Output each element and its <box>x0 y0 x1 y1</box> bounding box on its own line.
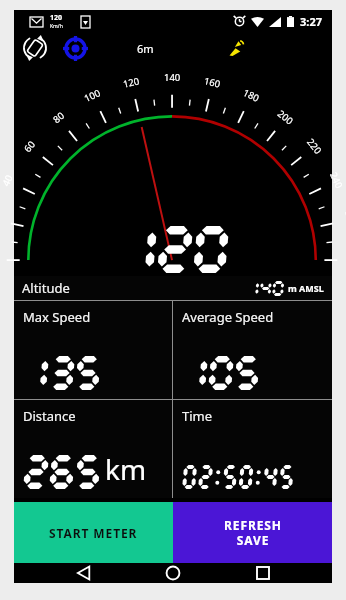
staticText: m AMSL <box>288 282 324 294</box>
staticText: START METER <box>49 525 138 541</box>
staticText: 6m <box>137 41 154 56</box>
staticText: 40 <box>0 173 16 188</box>
button[interactable]: Altitude <box>14 276 332 300</box>
staticText: 180 <box>241 86 262 105</box>
staticText: 100 <box>82 86 103 105</box>
button[interactable]: Time <box>173 400 332 498</box>
staticText: km <box>105 450 147 488</box>
button[interactable]: START METER <box>14 502 173 563</box>
staticText: 60 <box>21 138 38 155</box>
button[interactable]: REFRESH SAVE <box>173 502 332 563</box>
staticText: 120 <box>50 13 63 23</box>
staticText: Altitude <box>22 279 70 297</box>
staticText: 160 <box>203 74 222 91</box>
button[interactable]: Rotate screen <box>20 33 50 63</box>
staticText: 80 <box>50 109 67 126</box>
staticText: 120 <box>122 74 141 91</box>
button[interactable]: Back <box>64 563 104 583</box>
staticText: Distance <box>23 407 76 425</box>
staticText: Average Speed <box>182 308 274 326</box>
staticText: 140 <box>164 71 181 84</box>
button[interactable]: Average Speed <box>173 301 332 399</box>
staticText: Time <box>182 407 213 425</box>
button[interactable]: Max Speed <box>14 301 172 399</box>
button[interactable]: Recents <box>243 563 283 583</box>
staticText: REFRESH SAVE <box>224 517 282 548</box>
staticText: 3:27 <box>300 14 322 29</box>
staticText: 200 <box>275 107 296 128</box>
staticText: 220 <box>304 136 325 157</box>
button[interactable]: Home <box>153 563 193 583</box>
button[interactable]: GPS lock <box>60 33 90 63</box>
staticText: 240 <box>327 170 346 191</box>
staticText: Km/h <box>50 23 63 30</box>
button[interactable]: Satellite signal <box>222 35 248 61</box>
staticText: Max Speed <box>23 308 91 326</box>
button[interactable]: Distance <box>14 400 172 498</box>
